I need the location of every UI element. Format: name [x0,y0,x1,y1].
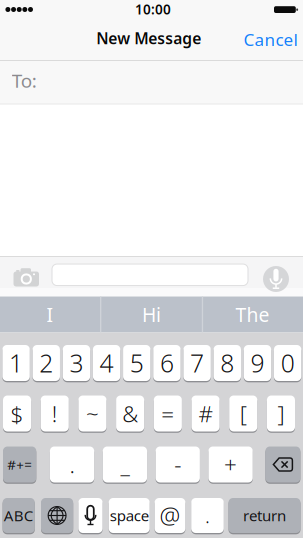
staticText: space [110,505,149,526]
button[interactable]: 4 [93,344,120,382]
staticText: & [122,398,138,429]
staticText: I [46,301,53,328]
button[interactable]: . [191,497,224,534]
button[interactable]: 5 [123,344,150,382]
button[interactable]: Next keyboard [41,497,73,534]
staticText: 1 [9,346,23,380]
staticText: . [205,502,210,529]
staticText: ] [277,398,284,429]
button[interactable]: _ [103,445,147,483]
button[interactable]: = [154,394,182,432]
button[interactable]: Dictation [78,497,103,534]
staticText: ~ [86,398,99,429]
button[interactable]: Camera [12,265,40,289]
button[interactable]: & [116,394,144,432]
button[interactable]: 9 [244,344,271,382]
button[interactable]: @ [155,497,185,534]
staticText: 4 [100,346,114,380]
staticText: To: [12,68,37,93]
button[interactable]: The [203,296,302,332]
button[interactable]: . [50,445,94,483]
button[interactable]: #+= [3,445,36,483]
button[interactable]: 0 [274,344,301,382]
staticText: 5 [130,346,144,380]
button[interactable]: $ [3,394,31,432]
staticText: 10:00 [135,0,171,18]
staticText: @ [159,500,180,531]
button[interactable]: 8 [214,344,241,382]
button[interactable]: 2 [33,344,60,382]
staticText: [ [240,398,247,429]
staticText: - [174,449,181,480]
button[interactable]: ABC [3,497,35,534]
button[interactable]: ~ [78,394,106,432]
staticText: New Message [96,28,201,49]
staticText: #+= [7,455,32,474]
button[interactable]: return [228,497,300,534]
staticText: 9 [250,346,264,380]
button[interactable]: 1 [2,344,30,382]
staticText: + [224,449,237,480]
button[interactable]: 7 [183,344,211,382]
button[interactable]: Delete [265,445,300,483]
staticText: _ [120,449,129,480]
button[interactable]: [ [229,394,257,432]
staticText: 8 [220,346,234,380]
button[interactable]: # [191,394,220,432]
staticText: 3 [69,346,83,380]
staticText: 2 [39,346,53,380]
button[interactable]: I [0,296,99,332]
button[interactable]: - [156,445,200,483]
staticText: # [199,398,213,429]
button[interactable]: Dictate [263,266,289,292]
staticText: $ [11,398,24,429]
button[interactable]: 3 [63,344,90,382]
staticText: Hi [142,301,161,328]
staticText: 6 [160,346,174,380]
staticText: ! [52,398,58,429]
staticText: . [69,449,74,480]
staticText: Cancel [243,28,297,51]
staticText: 7 [190,346,204,380]
staticText: = [161,398,174,429]
button[interactable]: space [109,497,150,534]
button[interactable]: Hi [102,296,201,332]
staticText: return [243,505,286,526]
button[interactable]: + [208,445,253,483]
button[interactable]: 6 [153,344,181,382]
staticText: 0 [281,346,295,380]
staticText: The [235,301,269,328]
button[interactable]: Cancel [243,28,297,51]
button[interactable]: ! [41,394,69,432]
button[interactable]: ] [267,394,295,432]
staticText: ABC [4,505,34,526]
